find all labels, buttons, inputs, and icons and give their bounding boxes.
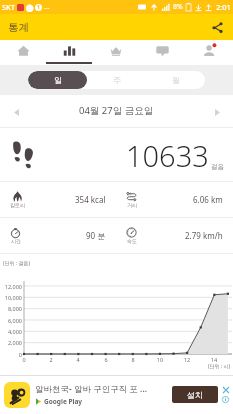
staticText: 알바천국- 알바 구인구직 포 ...	[35, 383, 148, 395]
staticText: 6,000	[0, 317, 22, 324]
button[interactable]: 속도	[116, 218, 233, 253]
button[interactable]: 일	[28, 71, 87, 89]
staticText: 1	[37, 4, 40, 11]
staticText: 월	[172, 75, 180, 85]
button[interactable]: Chat	[139, 40, 186, 65]
staticText: 속도	[127, 238, 137, 244]
staticText: 12,000	[0, 283, 22, 290]
staticText: 2.79 km/h	[185, 230, 223, 241]
button[interactable]: Share	[207, 17, 227, 37]
staticText: 2:01	[216, 2, 231, 12]
button[interactable]: 월	[146, 71, 205, 89]
staticText: 4,000	[0, 328, 22, 335]
button[interactable]: 시간	[0, 218, 116, 253]
staticText: 6	[100, 356, 112, 363]
staticText: 10633	[126, 136, 209, 175]
button[interactable]: Ad info	[221, 395, 230, 404]
staticText: 354 kcal	[75, 194, 106, 205]
button[interactable]: 설치	[172, 386, 218, 403]
staticText: 시간	[11, 238, 21, 244]
staticText: 주	[113, 75, 121, 85]
button[interactable]: Statistics	[46, 40, 92, 65]
staticText: (단위 : 시)	[208, 363, 230, 370]
staticText: 일	[54, 75, 62, 85]
button[interactable]: Close ad	[221, 385, 230, 394]
staticText: 2,000	[0, 339, 22, 346]
staticText: 90 분	[86, 230, 106, 241]
button[interactable]: Profile	[186, 40, 233, 65]
staticText: 8%	[173, 2, 183, 12]
staticText: 14	[208, 356, 220, 363]
staticText: 걸음	[211, 163, 224, 171]
staticText: 6.06 km	[193, 194, 223, 205]
staticText: Google Play	[44, 397, 83, 406]
staticText: 8,000	[0, 305, 22, 312]
button[interactable]: Next day	[207, 102, 227, 122]
button[interactable]: Previous day	[6, 102, 26, 122]
staticText: 🅛	[26, 4, 34, 11]
staticText: 통계	[8, 21, 29, 34]
staticText: 4	[72, 356, 84, 363]
button[interactable]: 주	[87, 71, 146, 89]
staticText: ...	[44, 2, 50, 12]
staticText: 10,000	[0, 294, 22, 301]
staticText: 12	[181, 356, 193, 363]
staticText: 10	[154, 356, 166, 363]
staticText: 8	[127, 356, 139, 363]
staticText: (단위 : 걸음)	[3, 260, 30, 267]
staticText: 0	[0, 351, 22, 358]
staticText: 거리	[127, 202, 137, 208]
button[interactable]: 거리	[116, 182, 233, 217]
staticText: 04월 27일 금요일	[79, 104, 154, 117]
button[interactable]: Ranking	[92, 40, 139, 65]
staticText: 칼로리	[10, 202, 25, 208]
button[interactable]: Home	[0, 40, 46, 65]
staticText: 2	[45, 356, 57, 363]
staticText: 0	[18, 356, 30, 363]
staticText: 설치	[187, 390, 203, 400]
button[interactable]: 칼로리	[0, 182, 116, 217]
staticText: SKT	[2, 2, 16, 12]
